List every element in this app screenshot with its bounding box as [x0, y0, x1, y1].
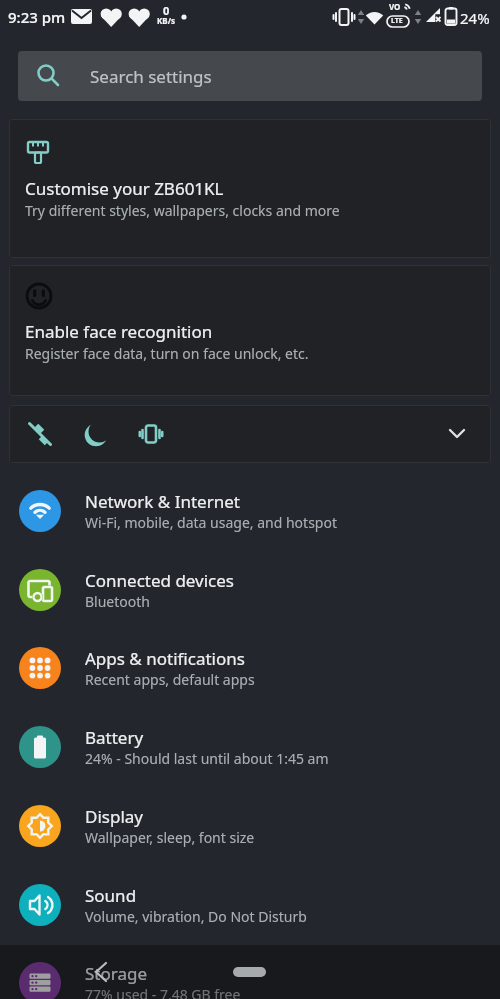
- button[interactable]: Apps & notifications: [0, 629, 500, 708]
- button[interactable]: Storage: [0, 944, 500, 999]
- staticText: Try different styles, wallpapers, clocks…: [25, 201, 340, 220]
- staticText: LTE: [391, 16, 403, 26]
- button[interactable]: Connected devices: [0, 551, 500, 630]
- staticText: 0: [163, 3, 170, 18]
- staticText: 77% used - 7.48 GB free: [85, 985, 241, 999]
- staticText: Storage: [85, 962, 148, 985]
- button[interactable]: Enable face recognition: [9, 265, 491, 396]
- button[interactable]: [93, 961, 108, 983]
- button[interactable]: [233, 967, 266, 977]
- staticText: 9:23 pm: [8, 7, 66, 27]
- staticText: Register face data, turn on face unlock,…: [25, 344, 309, 363]
- staticText: 24% - Should last until about 1:45 am: [85, 749, 329, 768]
- staticText: 24%: [460, 8, 490, 28]
- staticText: Apps & notifications: [85, 647, 245, 670]
- staticText: Network & Internet: [85, 490, 240, 513]
- staticText: Wi-Fi, mobile, data usage, and hotspot: [85, 513, 337, 532]
- staticText: Display: [85, 805, 143, 828]
- staticText: Bluetooth: [85, 592, 150, 611]
- staticText: Sound: [85, 884, 137, 907]
- staticText: Battery: [85, 726, 144, 749]
- button[interactable]: Display: [0, 787, 500, 866]
- staticText: VO: [389, 1, 401, 12]
- button[interactable]: [9, 405, 491, 463]
- staticText: KB/s: [157, 15, 175, 26]
- staticText: Enable face recognition: [25, 320, 213, 343]
- button[interactable]: [449, 427, 465, 441]
- button[interactable]: Customise your ZB601KL: [9, 119, 491, 258]
- staticText: Wallpaper, sleep, font size: [85, 828, 255, 847]
- button[interactable]: Sound: [0, 866, 500, 945]
- staticText: Recent apps, default apps: [85, 670, 255, 689]
- staticText: Connected devices: [85, 569, 235, 592]
- button[interactable]: Search settings: [18, 51, 482, 101]
- staticText: Volume, vibration, Do Not Disturb: [85, 907, 307, 926]
- button[interactable]: Network & Internet: [0, 472, 500, 551]
- button[interactable]: Battery: [0, 708, 500, 787]
- staticText: Customise your ZB601KL: [25, 177, 224, 200]
- staticText: Search settings: [90, 65, 212, 88]
